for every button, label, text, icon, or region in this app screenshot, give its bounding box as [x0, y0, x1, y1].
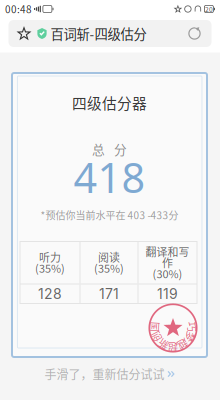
- button[interactable]: Refresh: [180, 21, 208, 45]
- staticText: 00:48: [5, 2, 32, 16]
- staticText: 作: [162, 255, 173, 270]
- staticText: 119: [157, 285, 178, 302]
- staticText: 总 分: [92, 140, 127, 158]
- staticText: 百词斩-四级估分: [50, 24, 146, 43]
- staticText: 国: [149, 320, 159, 334]
- staticText: 20: [205, 4, 213, 14]
- staticText: (35%): [94, 260, 124, 276]
- staticText: 超: [168, 340, 178, 354]
- staticText: 巧: [187, 320, 197, 334]
- staticText: 创: [151, 330, 161, 344]
- button[interactable]: Favorite: [11, 22, 36, 45]
- staticText: 听力: [39, 249, 61, 265]
- staticText: 新: [158, 337, 168, 352]
- staticText: 171: [99, 285, 119, 302]
- staticText: 手滑了，重新估分试试: [44, 365, 164, 383]
- staticText: 翻译和写: [145, 244, 189, 259]
- staticText: 128: [38, 285, 62, 302]
- staticText: (30%): [152, 266, 182, 281]
- staticText: 越: [178, 337, 188, 352]
- staticText: 阅读: [98, 249, 120, 265]
- staticText: *预估你当前水平在 403 -433分: [40, 208, 178, 222]
- staticText: 418: [73, 149, 145, 205]
- staticText: (35%): [35, 260, 65, 276]
- button[interactable]: 手滑了，重新估分试试: [36, 360, 183, 388]
- staticText: 四级估分器: [72, 92, 147, 113]
- staticText: 梦: [185, 330, 195, 344]
